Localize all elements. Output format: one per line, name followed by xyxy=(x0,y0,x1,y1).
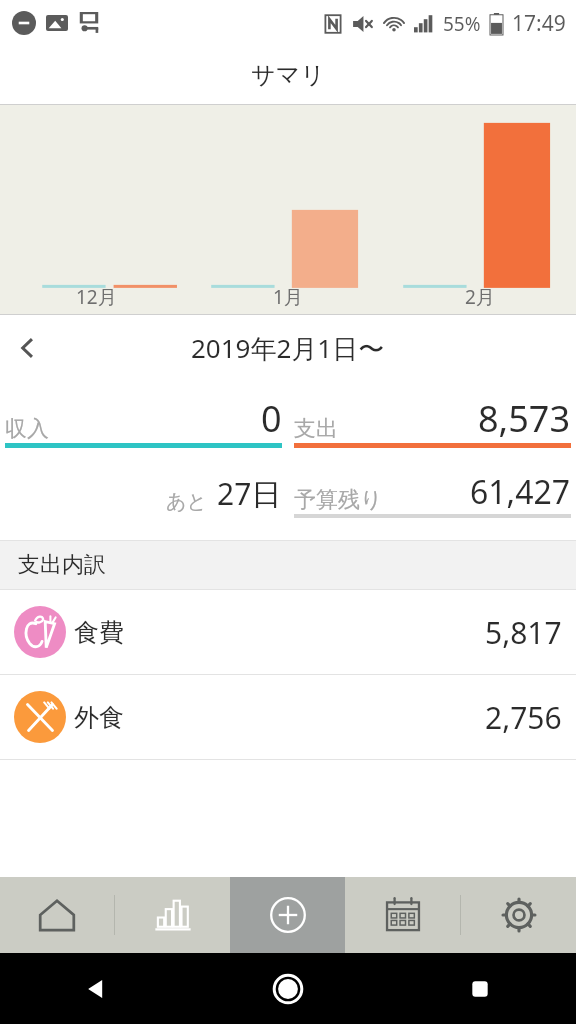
button[interactable]: 収入 xyxy=(5,394,282,443)
button[interactable]: Reports xyxy=(115,877,230,953)
staticText: 2月 xyxy=(465,284,495,310)
staticText: 55% xyxy=(443,11,481,37)
staticText: 収入 xyxy=(5,415,49,443)
button[interactable]: Back xyxy=(0,953,192,1024)
button[interactable]: Calendar xyxy=(345,877,460,953)
staticText: 予算残り xyxy=(294,486,383,514)
button[interactable]: 外食 xyxy=(0,675,576,759)
staticText: 支出内訳 xyxy=(18,551,106,579)
staticText: 1月 xyxy=(273,284,303,310)
button[interactable]: Add xyxy=(230,877,345,953)
button[interactable]: Home xyxy=(192,953,384,1024)
staticText: 0 xyxy=(261,394,282,443)
button[interactable]: 予算残り xyxy=(294,470,571,514)
button[interactable]: Previous period xyxy=(0,320,56,376)
button[interactable]: Home xyxy=(0,877,114,953)
staticText: あと xyxy=(166,489,207,514)
staticText: 12月 xyxy=(76,284,117,310)
button[interactable]: 食費 xyxy=(0,590,576,674)
button[interactable]: Settings xyxy=(461,877,576,953)
staticText: 8,573 xyxy=(478,394,571,443)
staticText: 2,756 xyxy=(485,697,562,738)
staticText: サマリ xyxy=(251,60,325,90)
staticText: 17:49 xyxy=(512,9,566,38)
staticText: 食費 xyxy=(74,617,124,648)
button[interactable]: 支出 xyxy=(294,394,571,443)
button[interactable]: あと xyxy=(5,473,282,514)
staticText: 27日 xyxy=(217,473,282,514)
button[interactable]: Recents xyxy=(384,953,576,1024)
button[interactable]: 2019年2月1日〜 xyxy=(191,330,385,366)
staticText: 支出 xyxy=(294,415,338,443)
staticText: 2019年2月1日〜 xyxy=(191,330,385,366)
staticText: 5,817 xyxy=(485,612,562,653)
staticText: 外食 xyxy=(74,702,124,733)
staticText: 61,427 xyxy=(470,470,571,514)
